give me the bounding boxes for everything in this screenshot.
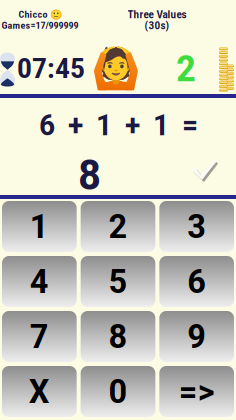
staticText: X [29, 372, 50, 411]
staticText: 5 [108, 262, 127, 301]
staticText: 2 [108, 207, 127, 246]
button[interactable]: 1 [2, 201, 77, 252]
staticText: Three Values [127, 8, 186, 21]
staticText: 6 [187, 262, 206, 301]
staticText: 8 [108, 317, 127, 356]
staticText: Chicco 🙂 [18, 9, 61, 20]
button[interactable]: 8 [81, 311, 155, 362]
button[interactable]: 4 [2, 256, 77, 307]
staticText: 1 [30, 207, 49, 246]
button[interactable]: 5 [81, 256, 155, 307]
staticText: 8 [78, 150, 101, 200]
staticText: 0 [108, 372, 127, 411]
staticText: => [179, 372, 215, 411]
button[interactable]: 6 [159, 256, 234, 307]
button[interactable]: 7 [2, 311, 77, 362]
staticText: 4 [30, 262, 49, 301]
staticText: 3 [187, 207, 206, 246]
button[interactable]: X [2, 366, 77, 417]
button[interactable]: 2 [81, 201, 155, 252]
staticText: 07:45 [17, 52, 85, 85]
button[interactable]: 0 [81, 366, 155, 417]
button[interactable]: 3 [159, 201, 234, 252]
staticText: 🙆 [91, 46, 141, 91]
staticText: (30s) [144, 19, 169, 32]
staticText: 6 + 1 + 1 = [39, 108, 198, 142]
staticText: 2 [176, 47, 196, 90]
button[interactable]: => [159, 366, 234, 417]
button[interactable]: 9 [159, 311, 234, 362]
staticText: Games=17/999999 [1, 20, 78, 31]
staticText: 9 [187, 317, 206, 356]
staticText: 7 [30, 317, 49, 356]
